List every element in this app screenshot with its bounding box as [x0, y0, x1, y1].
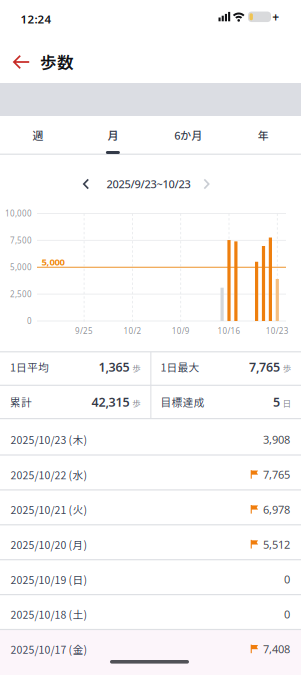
staticText: 7,500: [10, 235, 32, 246]
staticText: 0: [284, 572, 290, 587]
button[interactable]: 月: [75, 116, 150, 154]
staticText: 2025/10/19 (日): [10, 572, 87, 587]
staticText: 歩: [132, 397, 141, 409]
staticText: 5,512: [263, 537, 290, 552]
staticText: 9/25: [75, 326, 93, 336]
staticText: 10/23: [266, 326, 289, 336]
staticText: 2025/10/21 (火): [10, 502, 87, 517]
staticText: 2025/10/20 (月): [10, 537, 87, 552]
staticText: 歩: [282, 362, 291, 374]
staticText: 10,000: [5, 208, 32, 219]
staticText: 6か月: [174, 127, 202, 143]
staticText: +: [272, 9, 279, 25]
staticText: 日: [282, 397, 291, 409]
staticText: 7,765: [263, 467, 290, 482]
staticText: 10/16: [217, 326, 240, 336]
button[interactable]: 年: [226, 116, 301, 154]
staticText: 歩数: [40, 50, 74, 73]
staticText: 2,500: [10, 289, 32, 300]
staticText: 歩: [132, 362, 141, 374]
staticText: 2025/10/22 (水): [10, 467, 87, 482]
button[interactable]: 6か月: [150, 116, 226, 154]
staticText: 42,315: [91, 393, 129, 410]
button[interactable]: 前の期間: [72, 170, 100, 198]
staticText: 2025/10/18 (土): [10, 607, 87, 622]
staticText: 1日最大: [160, 359, 199, 375]
staticText: 5,000: [41, 255, 64, 268]
staticText: 週: [32, 127, 43, 143]
staticText: 2025/10/17 (金): [10, 641, 87, 657]
button[interactable]: 次の期間: [192, 170, 220, 198]
staticText: 目標達成: [160, 394, 204, 410]
staticText: 1日平均: [10, 359, 49, 375]
staticText: 5,000: [10, 262, 32, 273]
staticText: 3,908: [263, 432, 290, 447]
staticText: 10/9: [172, 326, 190, 336]
staticText: 12:24: [20, 11, 51, 27]
staticText: 10/2: [123, 326, 141, 336]
button[interactable]: 週: [0, 116, 75, 154]
staticText: 年: [258, 127, 269, 143]
staticText: 累計: [10, 394, 32, 410]
button[interactable]: Back: [4, 44, 40, 80]
staticText: 1,365: [98, 358, 129, 375]
staticText: 2025/9/23~10/23: [106, 176, 190, 191]
staticText: 0: [27, 316, 32, 326]
staticText: 0: [284, 607, 290, 622]
staticText: 7,765: [249, 358, 280, 375]
staticText: 6,978: [263, 502, 290, 517]
staticText: 月: [107, 127, 118, 143]
staticText: 7,408: [263, 642, 290, 657]
staticText: 2025/10/23 (木): [10, 432, 87, 447]
staticText: 5: [273, 393, 280, 410]
